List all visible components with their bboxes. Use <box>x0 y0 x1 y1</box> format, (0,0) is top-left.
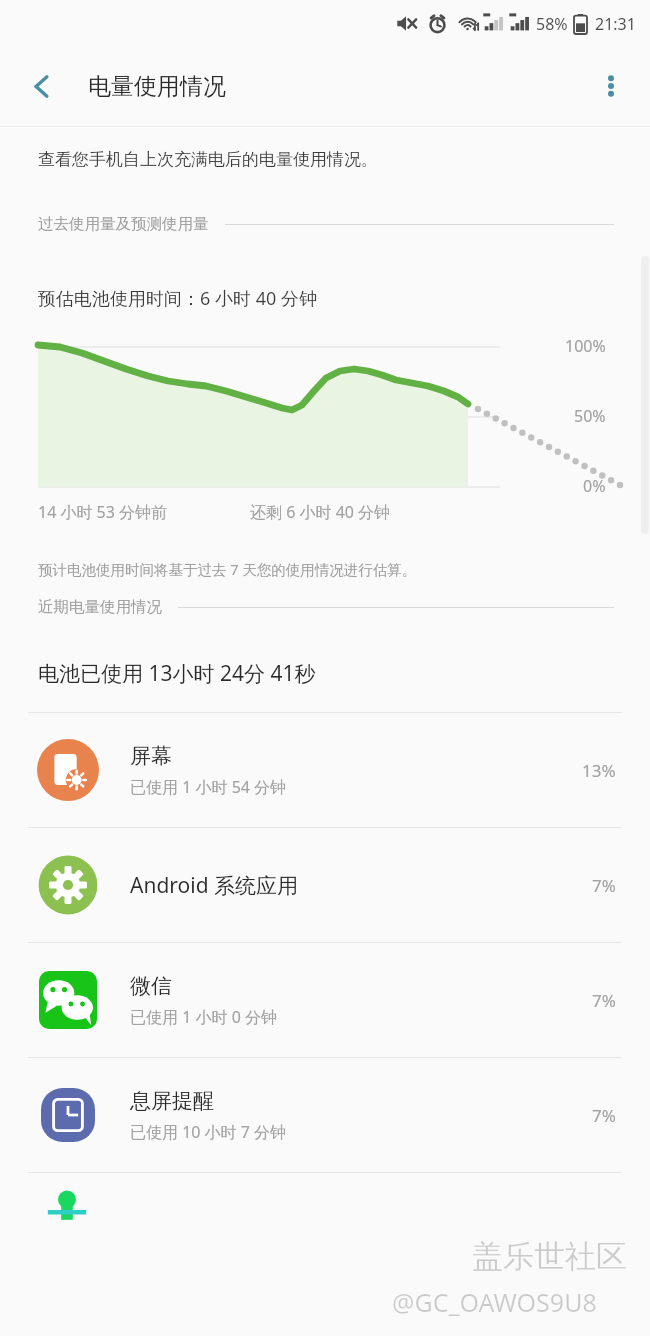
staticText: Android 系统应用 <box>130 871 299 900</box>
staticText: 预估电池使用时间：6 小时 40 分钟 <box>38 286 317 311</box>
staticText: 查看您手机自上次充满电后的电量使用情况。 <box>38 149 378 170</box>
staticText: 已使用 1 小时 0 分钟 <box>130 1006 277 1028</box>
button[interactable]: 屏幕 <box>0 713 650 827</box>
staticText: 已使用 10 小时 7 分钟 <box>130 1121 287 1143</box>
staticText: 已使用 1 小时 54 分钟 <box>130 776 287 798</box>
staticText: 还剩 6 小时 40 分钟 <box>250 501 391 523</box>
staticText: 息屏提醒 <box>130 1088 214 1114</box>
staticText: 21:31 <box>595 13 636 35</box>
button[interactable]: Back <box>12 57 70 115</box>
staticText: 7% <box>592 874 616 897</box>
staticText: @GC_OAWOS9U8 <box>392 1285 597 1319</box>
staticText: 电池已使用 13小时 24分 41秒 <box>38 659 316 688</box>
staticText: 13% <box>582 759 616 782</box>
staticText: 7% <box>592 989 616 1012</box>
button[interactable]: 息屏提醒 <box>0 1058 650 1172</box>
staticText: 14 小时 53 分钟前 <box>38 501 168 523</box>
button[interactable] <box>0 1173 650 1219</box>
button[interactable]: More options <box>584 59 638 113</box>
staticText: 屏幕 <box>130 743 172 769</box>
staticText: 50% <box>574 405 606 427</box>
staticText: 预计电池使用时间将基于过去 7 天您的使用情况进行估算。 <box>38 559 417 579</box>
staticText: 微信 <box>130 973 172 999</box>
staticText: 7% <box>592 1104 616 1127</box>
staticText: 电量使用情况 <box>88 72 226 101</box>
staticText: 过去使用量及预测使用量 <box>38 214 209 234</box>
button[interactable]: Android 系统应用 <box>0 828 650 942</box>
staticText: 近期电量使用情况 <box>38 597 162 617</box>
staticText: 58% <box>536 13 568 35</box>
button[interactable]: 微信 <box>0 943 650 1057</box>
staticText: 100% <box>565 335 606 357</box>
staticText: 0% <box>583 475 606 495</box>
staticText: 盖乐世社区 <box>472 1237 627 1276</box>
